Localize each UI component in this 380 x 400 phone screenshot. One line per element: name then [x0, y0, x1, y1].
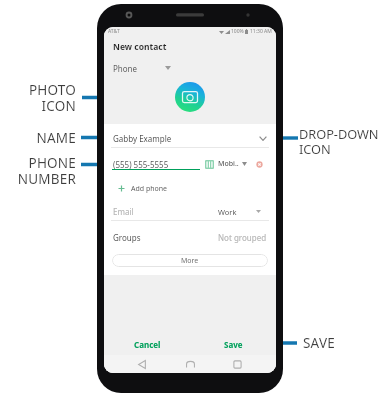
button[interactable]: Groups	[104, 226, 276, 248]
other: Email label	[256, 210, 261, 213]
staticText: Email	[113, 206, 134, 217]
staticText: SAVE	[303, 334, 335, 352]
other: Expand name fields	[259, 136, 267, 141]
staticText: Groups	[113, 232, 141, 243]
button[interactable]: Home	[179, 355, 201, 373]
staticText: 100%	[231, 28, 244, 35]
staticText: PHOTO ICON	[0, 81, 76, 115]
staticText: AT&T	[108, 28, 120, 35]
staticText: Save	[224, 339, 243, 350]
staticText: Not grouped	[218, 232, 267, 243]
button[interactable]: Add photo	[175, 82, 205, 112]
staticText: Work	[218, 207, 237, 217]
staticText: More	[181, 256, 199, 266]
button[interactable]: Recent apps	[226, 355, 248, 373]
button[interactable]: Phone	[113, 60, 276, 76]
staticText: New contact	[113, 41, 167, 53]
button[interactable]: Add phone	[104, 178, 276, 199]
button[interactable]: Gabby Example	[104, 127, 276, 150]
button[interactable]: Back	[131, 355, 153, 373]
button[interactable]: (555) 555-5555	[104, 153, 276, 175]
staticText: Add phone	[131, 184, 168, 194]
other: Remove	[256, 161, 263, 168]
staticText: (555) 555-5555	[113, 159, 169, 170]
staticText: DROP-DOWN ICON	[299, 125, 379, 158]
button[interactable]: Cancel	[104, 333, 190, 355]
button[interactable]: Email	[104, 201, 276, 222]
staticText: Cancel	[134, 339, 161, 350]
staticText: PHONE NUMBER	[0, 154, 76, 188]
staticText: Mobi..	[218, 159, 239, 169]
button[interactable]: More	[112, 254, 268, 267]
staticText: Phone	[113, 63, 138, 74]
staticText: Gabby Example	[113, 133, 172, 144]
staticText: NAME	[0, 129, 76, 147]
staticText: 11:30 AM	[250, 28, 272, 35]
button[interactable]: Save	[190, 333, 276, 355]
